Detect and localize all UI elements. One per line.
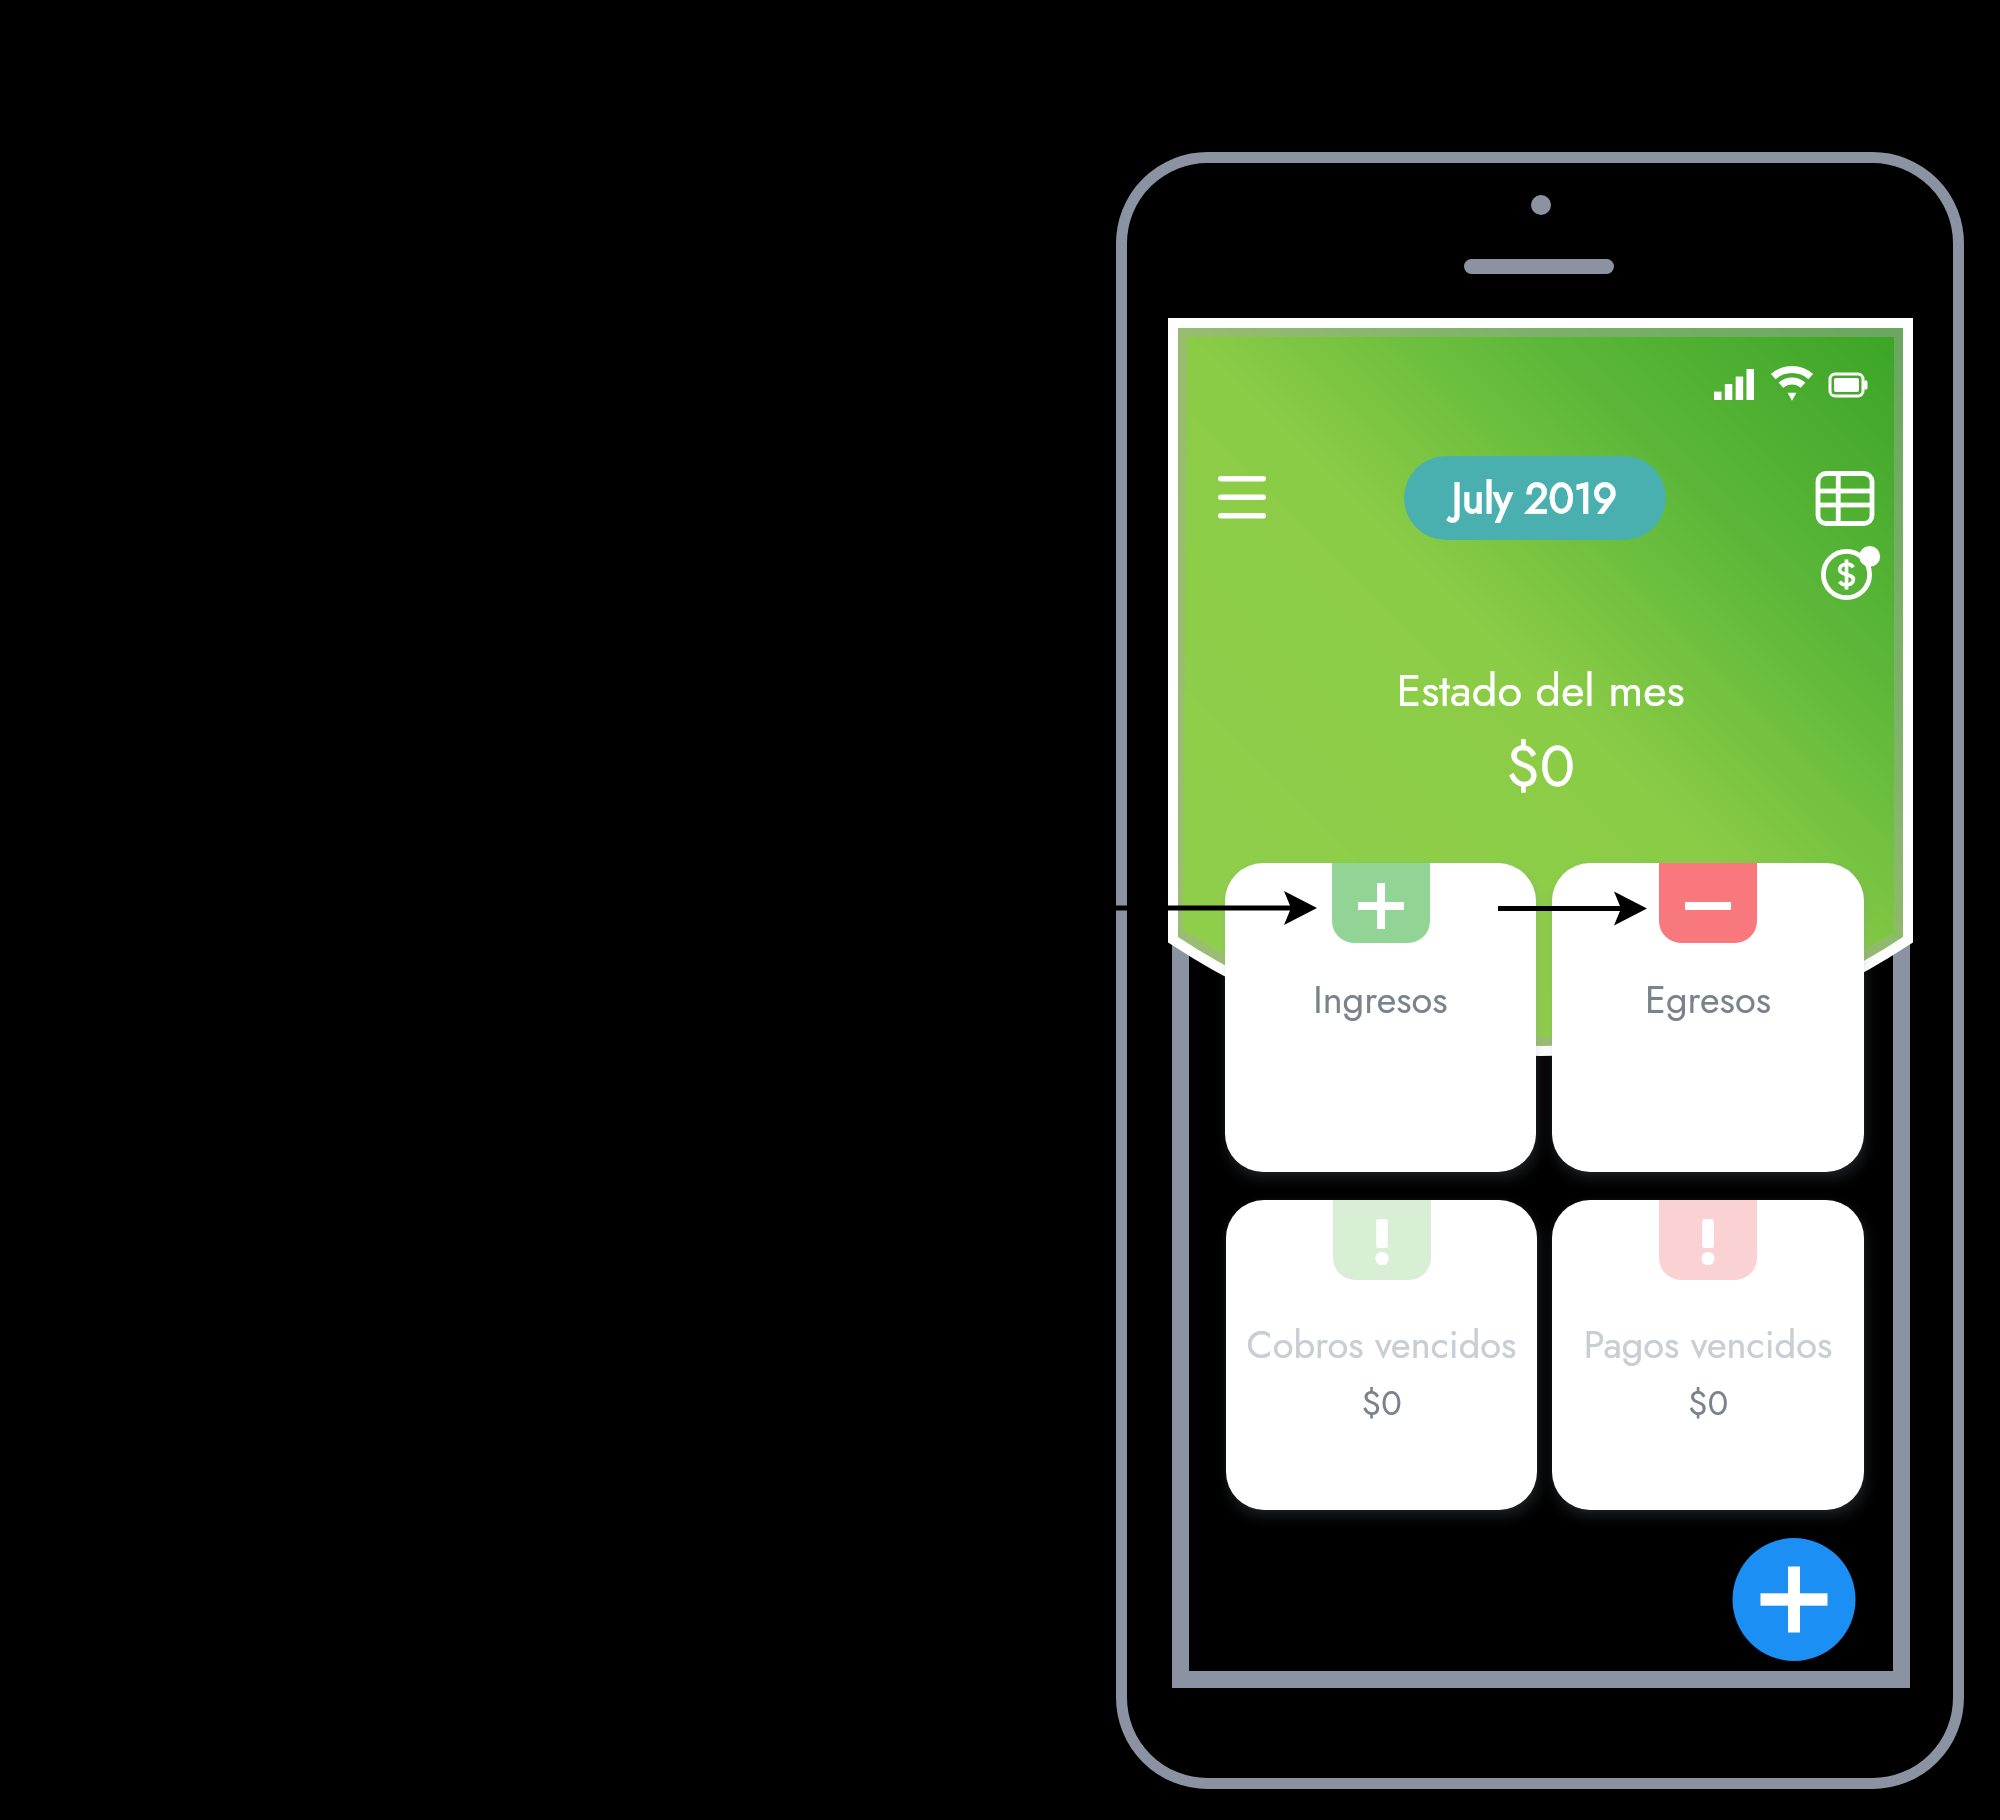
button[interactable] — [1552, 863, 1864, 1172]
button[interactable] — [1552, 1200, 1864, 1510]
staticText: Pagos vencidos — [1522, 1317, 1894, 1374]
button[interactable]: Balance — [1810, 540, 1880, 610]
button[interactable]: Table view — [1810, 465, 1880, 535]
button[interactable]: July 2019 — [1404, 456, 1666, 540]
staticText: Cobros vencidos — [1196, 1317, 1567, 1374]
staticText: $0 — [1226, 1379, 1537, 1430]
staticText: Estado del mes — [1188, 658, 1893, 726]
button[interactable]: Open navigation menu — [1206, 462, 1278, 534]
staticText: $0 — [1552, 1379, 1864, 1430]
button[interactable]: Add transaction — [1732, 1538, 1854, 1660]
staticText: Ingresos — [1195, 972, 1566, 1029]
staticText: Egresos — [1522, 972, 1894, 1029]
button[interactable] — [1226, 1200, 1537, 1510]
staticText: July 2019 — [1452, 468, 1618, 529]
button[interactable] — [1225, 863, 1536, 1172]
staticText: $0 — [1188, 724, 1893, 811]
